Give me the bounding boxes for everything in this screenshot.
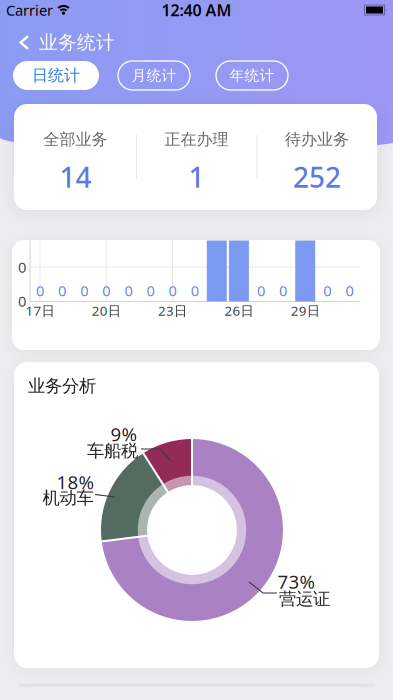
staticText: 正在办理: [164, 130, 228, 149]
staticText: 营运证: [279, 588, 330, 610]
staticText: Carrier: [6, 0, 53, 20]
staticText: 73%: [277, 569, 315, 594]
staticText: 0: [191, 281, 199, 300]
staticText: 26日: [224, 302, 253, 319]
staticText: 年统计: [229, 66, 274, 84]
staticText: 252: [293, 158, 341, 195]
button[interactable]: 业务统计: [19, 31, 115, 54]
staticText: 业务分析: [28, 375, 96, 397]
button[interactable]: 年统计: [216, 61, 288, 90]
button[interactable]: 月统计: [118, 61, 190, 90]
staticText: 待办业务: [285, 130, 349, 149]
staticText: 0: [80, 281, 88, 300]
staticText: 0: [18, 257, 26, 277]
staticText: 月统计: [131, 66, 176, 84]
staticText: 1: [188, 158, 204, 195]
staticText: 14: [59, 158, 91, 195]
staticText: 日统计: [32, 66, 80, 85]
staticText: 0: [257, 281, 265, 300]
staticText: 0: [36, 281, 44, 300]
staticText: 0: [124, 281, 132, 300]
button[interactable]: 日统计: [13, 61, 99, 90]
staticText: 0: [102, 281, 110, 300]
staticText: 机动车: [42, 487, 93, 509]
staticText: 车船税: [87, 440, 138, 462]
staticText: 0: [169, 281, 177, 300]
staticText: 业务统计: [39, 31, 115, 54]
staticText: 0: [58, 281, 66, 300]
staticText: 9%: [110, 422, 137, 446]
staticText: 12:40 AM: [161, 0, 231, 21]
staticText: 0: [279, 281, 287, 300]
staticText: 17日: [25, 302, 54, 319]
staticText: 23日: [158, 302, 187, 319]
staticText: 0: [146, 281, 154, 300]
staticText: 18%: [56, 470, 94, 494]
staticText: 0: [323, 281, 331, 300]
staticText: 全部业务: [43, 130, 107, 149]
staticText: 0: [18, 291, 26, 311]
staticText: 29日: [291, 302, 320, 319]
staticText: 0: [345, 281, 353, 300]
staticText: 20日: [92, 302, 121, 319]
